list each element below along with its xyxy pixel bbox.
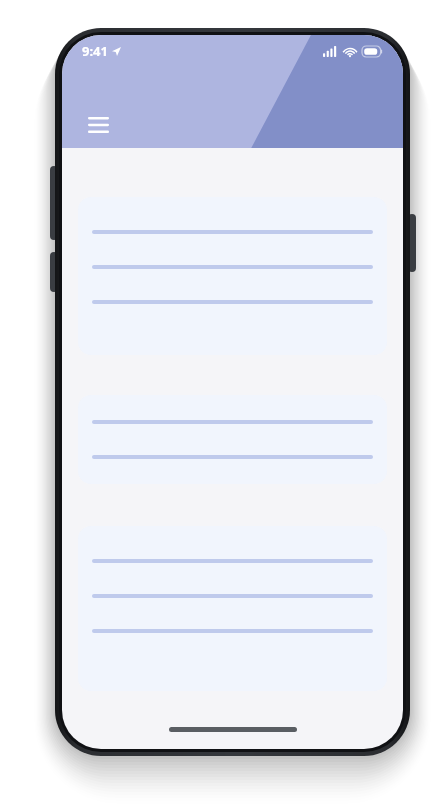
staticText: 9:41 bbox=[82, 42, 108, 60]
button[interactable] bbox=[78, 526, 387, 691]
button[interactable] bbox=[78, 395, 387, 484]
button[interactable] bbox=[78, 197, 387, 355]
button[interactable]: Open navigation menu bbox=[74, 105, 122, 145]
